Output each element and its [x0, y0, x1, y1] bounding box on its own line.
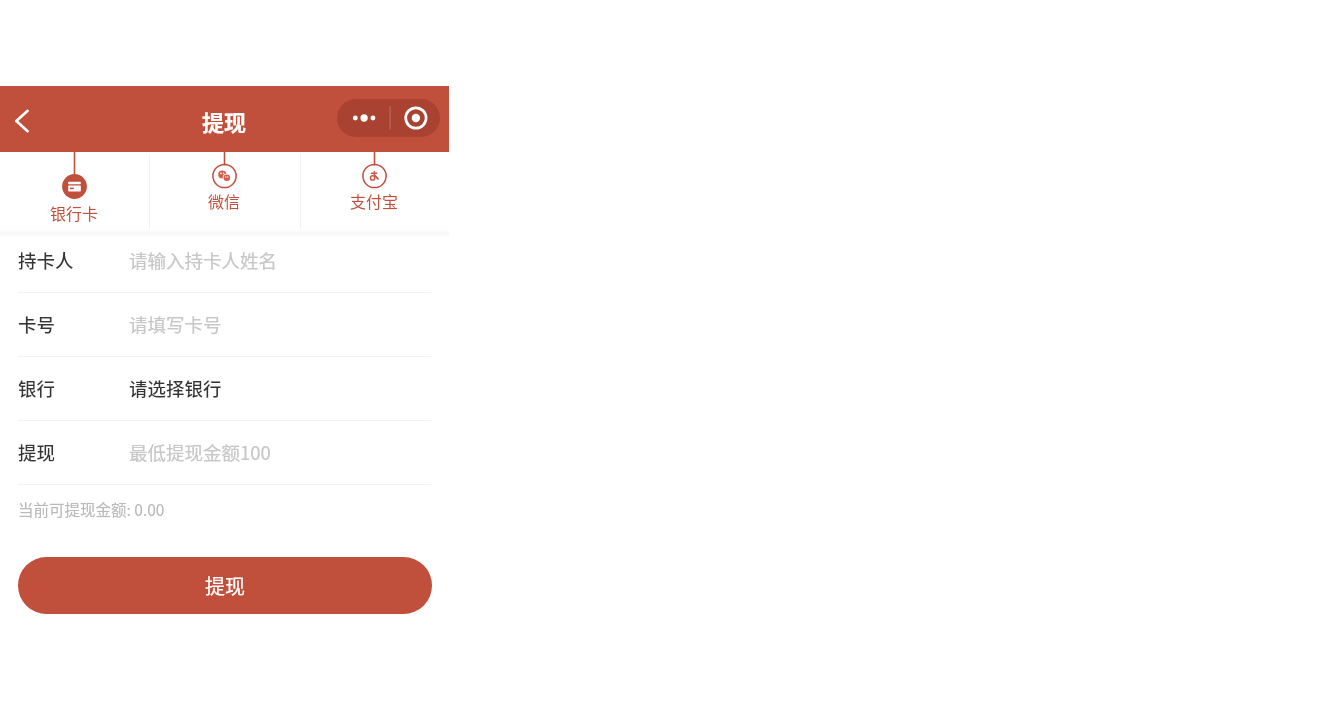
staticText: 微信 — [208, 189, 241, 212]
staticText: 银行 — [18, 375, 129, 402]
staticText: 请选择银行 — [129, 375, 222, 402]
staticText: 银行卡 — [50, 201, 99, 224]
button[interactable]: 银行 — [0, 357, 449, 421]
button[interactable]: 微信 — [149, 152, 300, 229]
button[interactable]: 卡号 — [0, 293, 449, 357]
button[interactable]: Back — [0, 99, 44, 143]
staticText: 提现 — [202, 105, 247, 137]
button[interactable]: 持卡人 — [0, 229, 449, 293]
button[interactable]: More options — [337, 99, 389, 137]
staticText: 请填写卡号 — [129, 311, 222, 338]
button[interactable]: 支付宝 — [300, 152, 449, 229]
staticText: 持卡人 — [18, 247, 129, 274]
staticText: 当前可提现金额: 0.00 — [18, 498, 165, 520]
button[interactable]: 银行卡 — [0, 152, 149, 229]
staticText: 请输入持卡人姓名 — [129, 247, 278, 274]
button[interactable]: Close mini program — [389, 99, 440, 137]
button[interactable]: 提现 — [18, 557, 432, 614]
staticText: 卡号 — [18, 311, 129, 338]
staticText: 支付宝 — [350, 189, 399, 212]
staticText: 提现 — [18, 439, 129, 466]
staticText: 提现 — [205, 571, 245, 600]
button[interactable]: 提现 — [0, 421, 449, 485]
staticText: 最低提现金额100 — [129, 439, 271, 466]
